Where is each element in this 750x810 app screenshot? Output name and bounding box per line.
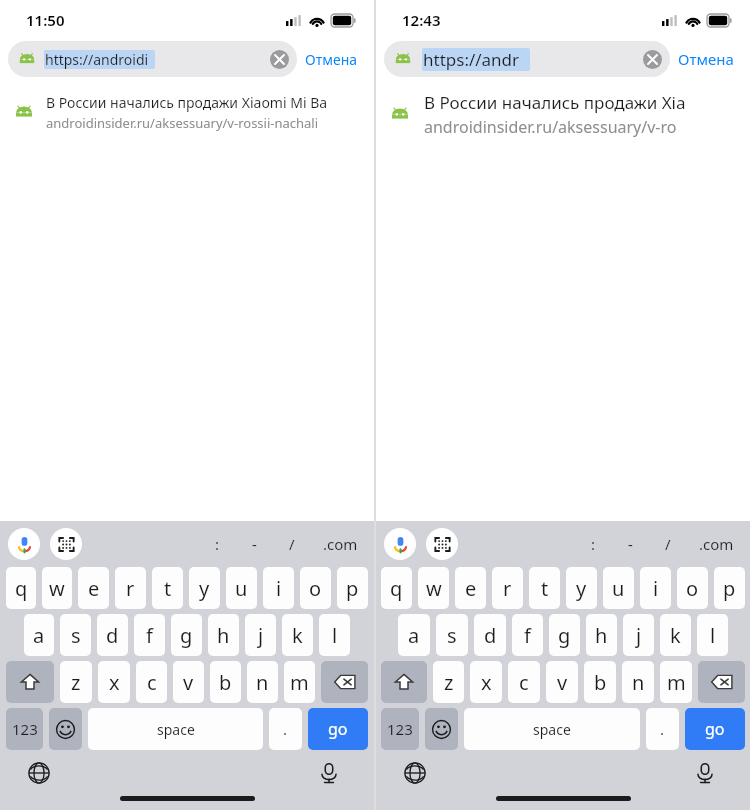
button[interactable]: В России начались продажи Xia (376, 88, 750, 140)
button[interactable]: Voice input (384, 528, 416, 560)
button[interactable]: a (398, 614, 430, 656)
button[interactable]: y (566, 567, 597, 609)
button[interactable]: m (660, 661, 692, 703)
button[interactable]: u (226, 567, 257, 609)
button[interactable]: i (263, 567, 294, 609)
button[interactable]: x (470, 661, 502, 703)
button[interactable]: k (282, 614, 313, 656)
button[interactable]: m (284, 661, 315, 703)
button[interactable]: l (319, 614, 350, 656)
button[interactable]: Отмена (297, 46, 366, 73)
staticText: k (670, 622, 681, 649)
button[interactable]: t (152, 567, 183, 609)
button[interactable]: o (677, 567, 708, 609)
button[interactable]: - (240, 528, 269, 560)
button[interactable]: g (549, 614, 580, 656)
button[interactable]: Shift (6, 661, 54, 703)
button[interactable]: .com (691, 528, 742, 560)
button[interactable]: 123 (381, 708, 419, 750)
button[interactable]: j (245, 614, 276, 656)
button[interactable]: .com (315, 528, 366, 560)
button[interactable]: Clear (643, 50, 662, 69)
button[interactable]: c (136, 661, 167, 703)
button[interactable]: n (247, 661, 278, 703)
button[interactable]: 123 (6, 708, 43, 750)
staticText: q (390, 575, 403, 602)
button[interactable]: r (492, 567, 523, 609)
button[interactable]: / (277, 528, 307, 560)
button[interactable]: q (381, 567, 412, 609)
button[interactable]: d (474, 614, 506, 656)
button[interactable]: v (546, 661, 578, 703)
button[interactable]: b (210, 661, 241, 703)
button[interactable]: l (697, 614, 728, 656)
button[interactable]: k (660, 614, 691, 656)
button[interactable]: https://androidinsider.ru (384, 41, 670, 77)
button[interactable]: f (134, 614, 165, 656)
button[interactable]: Dictation (316, 760, 342, 786)
button[interactable]: t (529, 567, 560, 609)
button[interactable]: Emoji (425, 708, 458, 750)
button[interactable]: z (433, 661, 464, 703)
button[interactable]: a (24, 614, 54, 656)
button[interactable]: Scan (426, 528, 458, 560)
button[interactable]: v (173, 661, 204, 703)
button[interactable]: Отмена (670, 45, 742, 73)
button[interactable]: . (269, 708, 302, 750)
button[interactable]: s (60, 614, 91, 656)
button[interactable]: go (685, 708, 745, 750)
button[interactable]: n (622, 661, 654, 703)
button[interactable]: z (60, 661, 92, 703)
button[interactable]: : (203, 528, 232, 560)
button[interactable]: w (42, 567, 72, 609)
button[interactable]: p (337, 567, 368, 609)
button[interactable]: Dictation (692, 760, 718, 786)
button[interactable]: y (189, 567, 220, 609)
button[interactable]: - (616, 528, 645, 560)
button[interactable]: f (512, 614, 543, 656)
button[interactable]: Voice input (8, 528, 40, 560)
button[interactable]: go (308, 708, 368, 750)
button[interactable]: j (623, 614, 654, 656)
button[interactable]: r (115, 567, 146, 609)
staticText: go (328, 718, 348, 740)
staticText: h (217, 622, 230, 649)
staticText: t (164, 575, 172, 602)
staticText: f (146, 622, 153, 649)
button[interactable]: Backspace (698, 661, 745, 703)
button[interactable]: Change language (402, 760, 428, 786)
button[interactable]: c (508, 661, 540, 703)
button[interactable]: / (653, 528, 683, 560)
button[interactable]: b (584, 661, 616, 703)
button[interactable]: В России начались продажи Xiaomi Mi Ba (0, 86, 374, 138)
button[interactable]: space (88, 708, 263, 750)
button[interactable]: s (436, 614, 468, 656)
button[interactable]: q (6, 567, 36, 609)
button[interactable]: w (418, 567, 449, 609)
button[interactable]: Change language (26, 760, 52, 786)
button[interactable]: Clear (270, 50, 289, 69)
button[interactable]: e (455, 567, 486, 609)
button[interactable]: Scan (50, 528, 82, 560)
button[interactable]: Backspace (321, 661, 368, 703)
button[interactable]: Shift (381, 661, 427, 703)
staticText: u (235, 575, 248, 602)
button[interactable]: i (640, 567, 671, 609)
staticText: s (447, 622, 457, 649)
button[interactable]: space (464, 708, 640, 750)
button[interactable]: p (714, 567, 745, 609)
staticText: 11:50 (26, 10, 65, 30)
staticText: m (290, 669, 309, 696)
button[interactable]: https://androidinsider.ru/aksess (8, 41, 297, 77)
button[interactable]: Emoji (49, 708, 82, 750)
button[interactable]: h (586, 614, 617, 656)
button[interactable]: h (208, 614, 239, 656)
button[interactable]: : (579, 528, 608, 560)
button[interactable]: o (300, 567, 331, 609)
button[interactable]: d (97, 614, 128, 656)
button[interactable]: x (98, 661, 130, 703)
button[interactable]: u (603, 567, 634, 609)
button[interactable]: e (78, 567, 109, 609)
button[interactable]: g (171, 614, 202, 656)
button[interactable]: . (646, 708, 679, 750)
